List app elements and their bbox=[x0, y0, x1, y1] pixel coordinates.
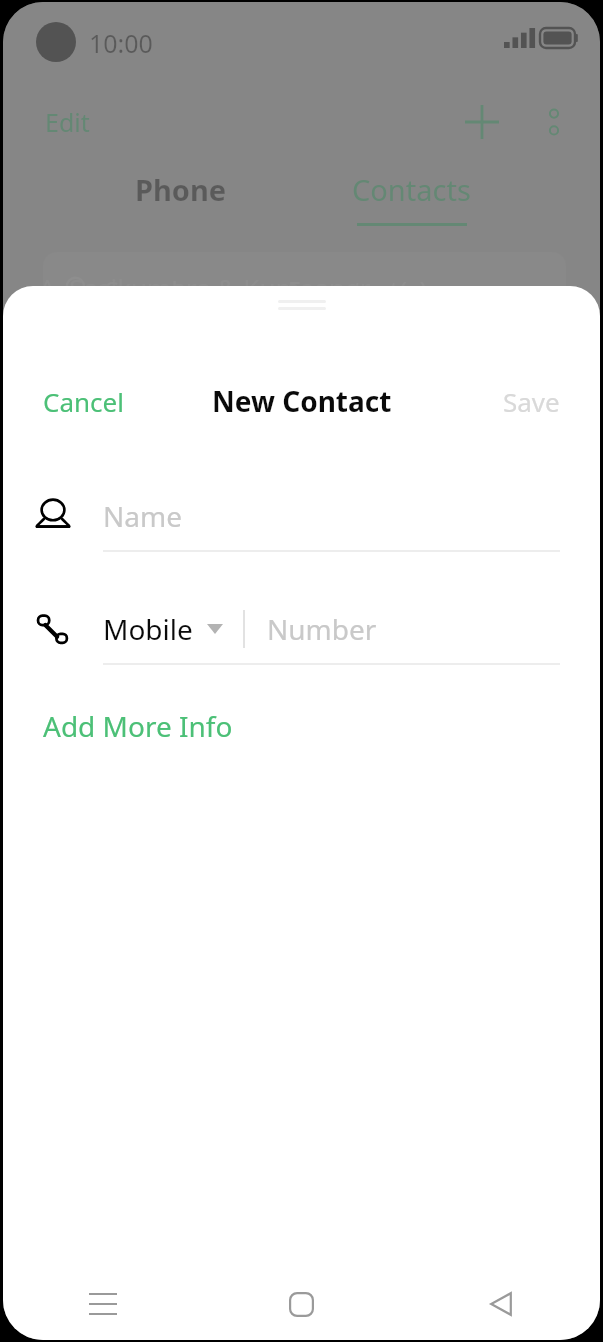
staticText: Save bbox=[503, 384, 560, 419]
button[interactable]: Search among 5 contact(s) bbox=[43, 252, 566, 326]
staticText: Number bbox=[267, 610, 377, 648]
staticText: Mobile bbox=[103, 610, 193, 648]
staticText: Edit bbox=[45, 105, 90, 139]
button[interactable]: Edit bbox=[27, 97, 108, 147]
button[interactable] bbox=[3, 2, 600, 1340]
button[interactable]: Cancel bbox=[25, 375, 142, 428]
staticText: Name bbox=[103, 497, 182, 535]
button[interactable]: Add More Info bbox=[25, 697, 251, 755]
staticText: 10:00 bbox=[89, 26, 153, 60]
button[interactable]: Add contact bbox=[454, 94, 510, 150]
staticText: A Sasikumara & Kumaaner bbox=[39, 270, 371, 305]
button[interactable]: Recent apps bbox=[3, 1268, 202, 1340]
button[interactable]: Name bbox=[3, 482, 600, 550]
button[interactable]: Save bbox=[485, 375, 578, 428]
button[interactable]: Home bbox=[202, 1268, 401, 1340]
staticText: Contacts bbox=[352, 170, 471, 209]
staticText: Search among 5 contact(s) bbox=[105, 272, 428, 307]
button[interactable]: Contacts bbox=[321, 170, 501, 232]
button[interactable]: Phone bbox=[91, 170, 271, 232]
staticText: Phone bbox=[135, 170, 227, 209]
staticText: Cancel bbox=[43, 384, 124, 419]
button[interactable]: Number bbox=[267, 610, 600, 648]
button[interactable]: Mobile bbox=[103, 610, 223, 648]
button[interactable]: Back bbox=[401, 1268, 600, 1340]
staticText: Add More Info bbox=[43, 707, 233, 745]
staticText: New Contact bbox=[212, 382, 392, 420]
button[interactable]: More options bbox=[526, 94, 582, 150]
